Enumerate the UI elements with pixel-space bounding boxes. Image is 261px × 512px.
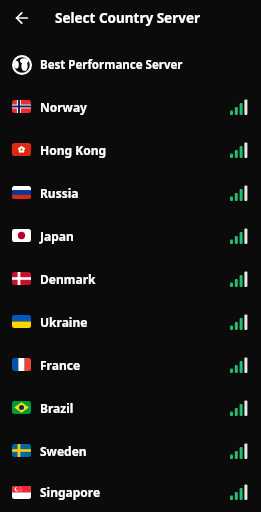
staticText: Ukraine [40,314,88,330]
staticText: Singapore [40,484,101,500]
button[interactable]: Ukraine [0,300,261,343]
staticText: Norway [40,99,87,115]
staticText: France [40,357,81,373]
button[interactable]: Sweden [0,429,261,472]
staticText: Brazil [40,400,74,416]
staticText: Russia [40,185,79,201]
button[interactable]: Brazil [0,386,261,429]
button[interactable] [10,6,34,30]
button[interactable]: Hong Kong [0,128,261,171]
staticText: Denmark [40,271,96,287]
button[interactable]: Norway [0,85,261,128]
button[interactable]: Best Performance Server [0,45,261,85]
button[interactable]: Russia [0,171,261,214]
staticText: Hong Kong [40,142,107,158]
staticText: Best Performance Server [40,57,183,73]
button[interactable]: Denmark [0,257,261,300]
staticText: Sweden [40,443,87,459]
button[interactable]: Japan [0,214,261,257]
button[interactable]: Singapore [0,472,261,512]
staticText: Japan [40,228,74,244]
button[interactable]: France [0,343,261,386]
staticText: Select Country Server [55,9,201,27]
